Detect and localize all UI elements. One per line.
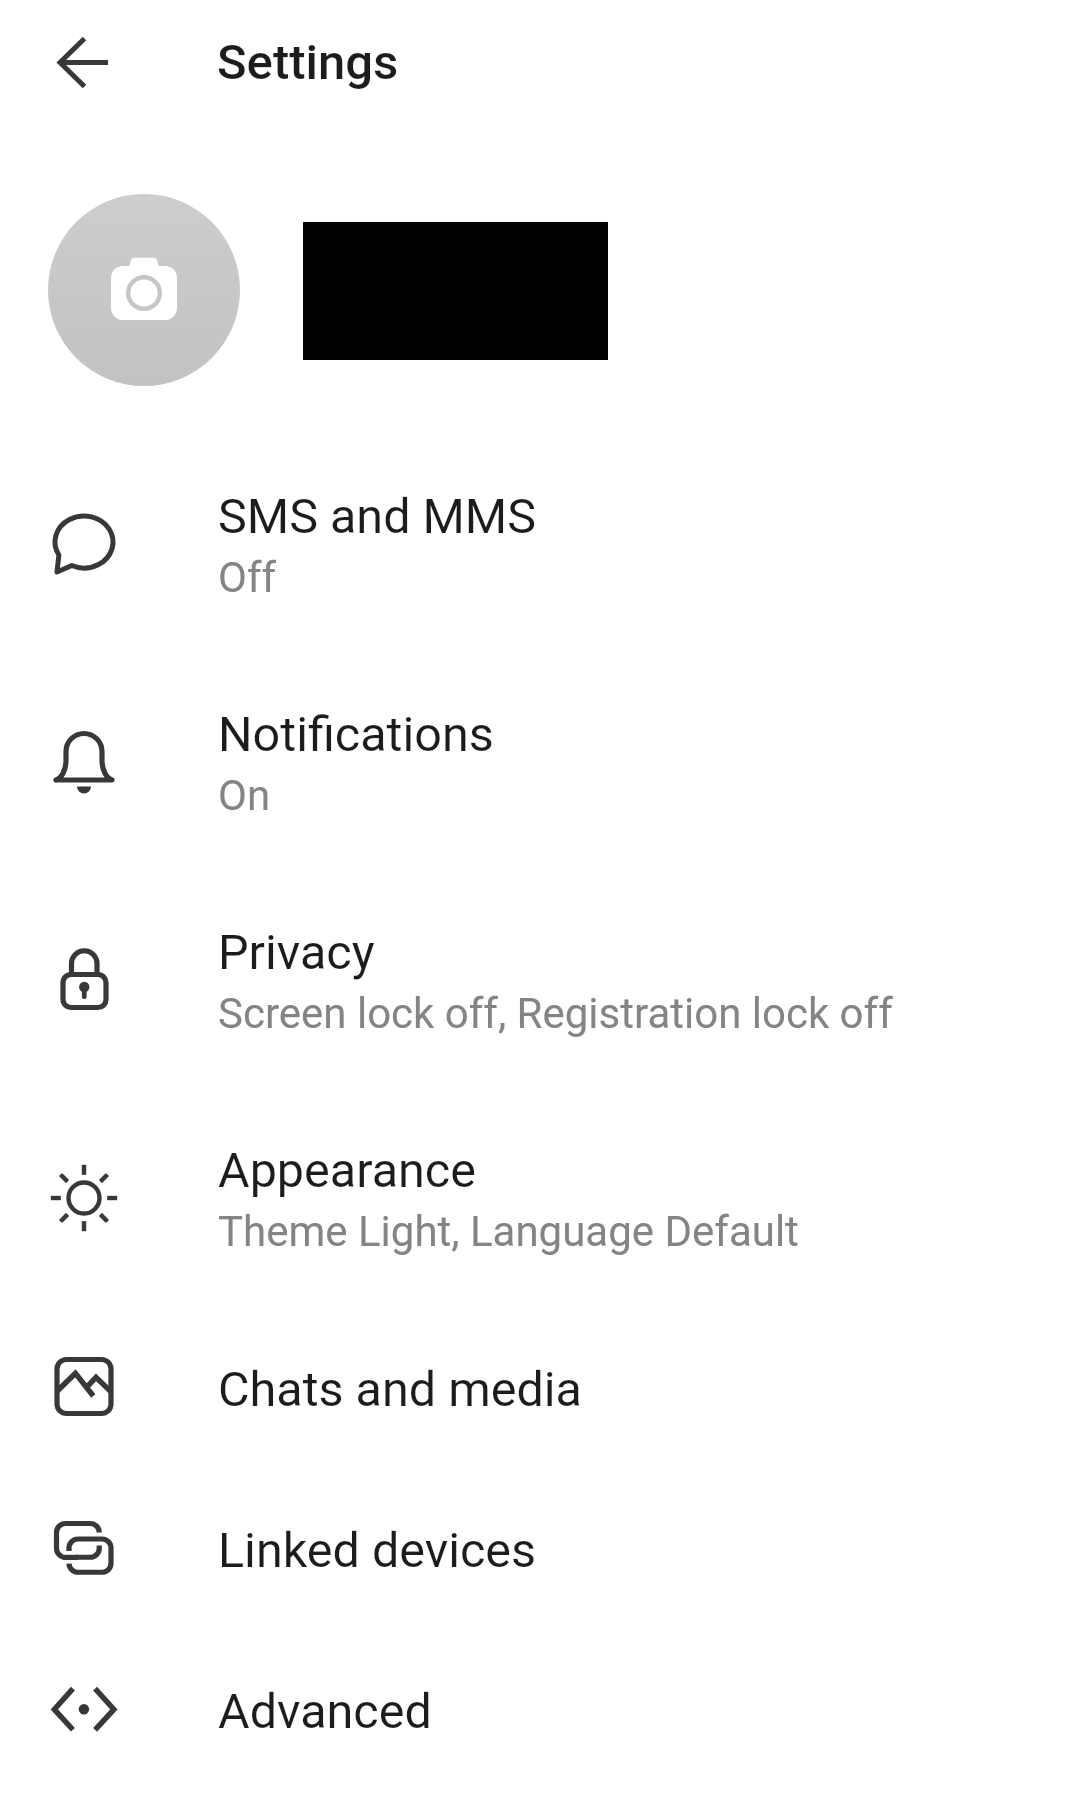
staticText: Advanced — [218, 1683, 432, 1740]
button[interactable]: Chats and media — [0, 1310, 1080, 1471]
staticText: Settings — [217, 34, 399, 91]
button[interactable]: Linked devices — [0, 1471, 1080, 1632]
button[interactable]: Privacy — [0, 874, 1080, 1092]
button[interactable]: Appearance — [0, 1092, 1080, 1310]
staticText: Appearance — [218, 1142, 476, 1199]
button[interactable] — [0, 126, 1080, 438]
staticText: Linked devices — [218, 1522, 537, 1579]
button[interactable]: Notifications — [0, 656, 1080, 874]
staticText: Privacy — [218, 924, 375, 981]
staticText: Off — [218, 553, 277, 602]
staticText: Notifications — [218, 706, 494, 763]
staticText: On — [218, 771, 271, 820]
staticText: Screen lock off, Registration lock off — [218, 989, 893, 1038]
button[interactable] — [35, 15, 131, 111]
staticText: Theme Light, Language Default — [218, 1207, 799, 1256]
button[interactable]: Advanced — [0, 1632, 1080, 1793]
button[interactable]: SMS and MMS — [0, 438, 1080, 656]
staticText: SMS and MMS — [218, 488, 536, 545]
staticText: Chats and media — [218, 1361, 582, 1418]
